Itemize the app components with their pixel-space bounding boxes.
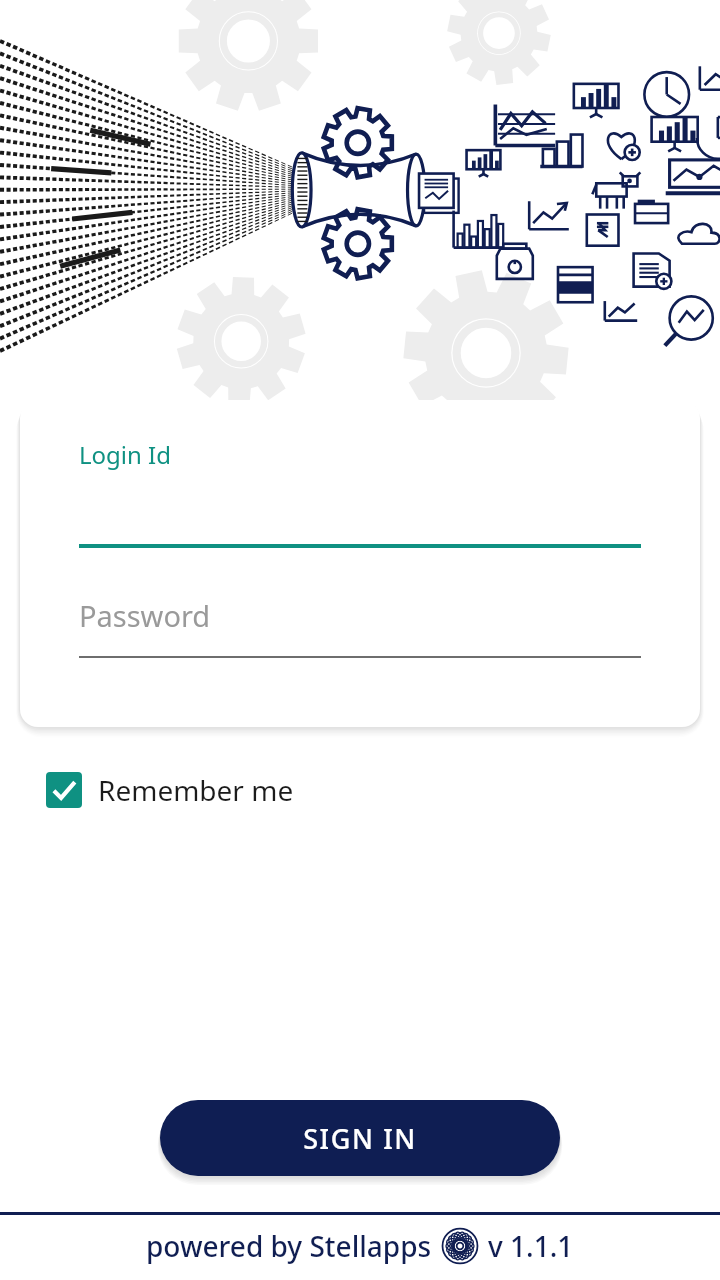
- staticText: powered by Stellapps: [146, 1227, 432, 1265]
- button[interactable]: Login Id: [79, 438, 641, 548]
- button[interactable]: Password: [79, 596, 641, 658]
- staticText: Login Id: [79, 438, 172, 471]
- staticText: Password: [79, 596, 211, 635]
- staticText: Remember me: [98, 771, 294, 809]
- button[interactable]: Remember me: [46, 765, 294, 815]
- staticText: SIGN IN: [303, 1120, 417, 1157]
- button[interactable]: SIGN IN: [160, 1100, 560, 1176]
- staticText: v 1.1.1: [488, 1227, 574, 1265]
